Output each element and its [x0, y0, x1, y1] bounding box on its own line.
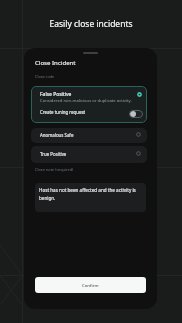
button[interactable]: Anomalous Safe: [31, 128, 147, 143]
button[interactable]: Host has not been affected and the activ…: [35, 183, 146, 212]
button[interactable]: True Positive: [31, 146, 147, 163]
staticText: True Positive: [40, 151, 67, 157]
staticText: Host has not been affected and the activ…: [39, 187, 139, 201]
staticText: Close code: [35, 74, 55, 79]
button[interactable]: Create tuning request toggle: [129, 110, 143, 118]
staticText: False Positive: [40, 91, 72, 98]
staticText: Anomalous Safe: [40, 132, 74, 138]
staticText: Close Incident: [35, 58, 76, 66]
button[interactable]: False Positive: [31, 86, 147, 123]
staticText: Considered non-malicious or duplicate ac…: [40, 98, 132, 104]
staticText: Confirm: [82, 282, 99, 288]
button[interactable]: Confirm: [35, 277, 146, 293]
staticText: Easily close incidents: [0, 18, 182, 30]
staticText: Create tuning request: [40, 109, 86, 115]
staticText: Close note (required): [35, 167, 74, 172]
